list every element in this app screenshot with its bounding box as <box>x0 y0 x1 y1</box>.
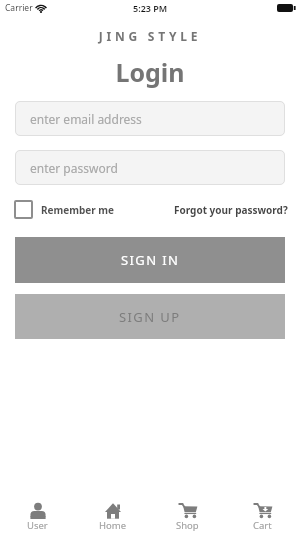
staticText: JING STYLE <box>0 28 300 44</box>
staticText: Carrier <box>5 2 33 14</box>
staticText: SIGN IN <box>121 251 180 269</box>
button[interactable]: enter password <box>15 150 285 185</box>
staticText: enter email address <box>30 111 142 127</box>
button[interactable]: Cart <box>225 495 300 533</box>
button[interactable]: Forgot your password? <box>174 203 288 217</box>
button[interactable]: User <box>0 495 75 533</box>
staticText: User <box>27 519 48 532</box>
staticText: Shop <box>176 519 199 532</box>
staticText: 5:23 PM <box>133 2 168 14</box>
staticText: SIGN UP <box>119 308 181 326</box>
staticText: Cart <box>253 519 272 532</box>
button[interactable]: Home <box>75 495 150 533</box>
staticText: Remember me <box>41 203 115 217</box>
staticText: enter password <box>30 160 118 176</box>
button[interactable]: Shop <box>150 495 225 533</box>
button[interactable]: enter email address <box>15 101 285 136</box>
button[interactable]: SIGN IN <box>15 237 285 283</box>
staticText: Login <box>0 55 300 89</box>
staticText: Home <box>99 519 127 532</box>
button[interactable] <box>14 200 33 219</box>
button[interactable]: SIGN UP <box>15 294 285 339</box>
